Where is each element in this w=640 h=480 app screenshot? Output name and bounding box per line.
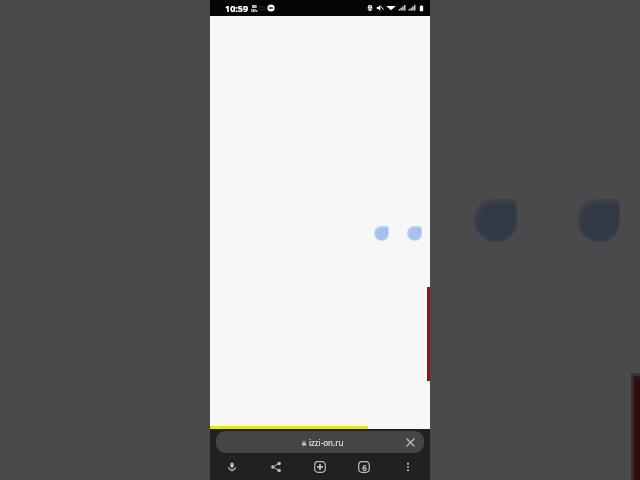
- staticText: 10:59: [225, 2, 249, 14]
- button[interactable]: Voice search: [210, 453, 254, 480]
- button[interactable]: izzi-on.ru: [216, 431, 424, 453]
- button[interactable]: New tab: [298, 453, 342, 480]
- staticText: KB/s: [251, 9, 258, 13]
- button[interactable]: More options: [386, 453, 430, 480]
- button[interactable]: Web page content: [210, 16, 430, 426]
- button[interactable]: Tabs: [342, 453, 386, 480]
- staticText: izzi-on.ru: [309, 437, 344, 448]
- button[interactable]: Share: [254, 453, 298, 480]
- button[interactable]: Close tab: [403, 435, 417, 449]
- staticText: 6: [362, 462, 367, 473]
- staticText: 50: [252, 4, 257, 9]
